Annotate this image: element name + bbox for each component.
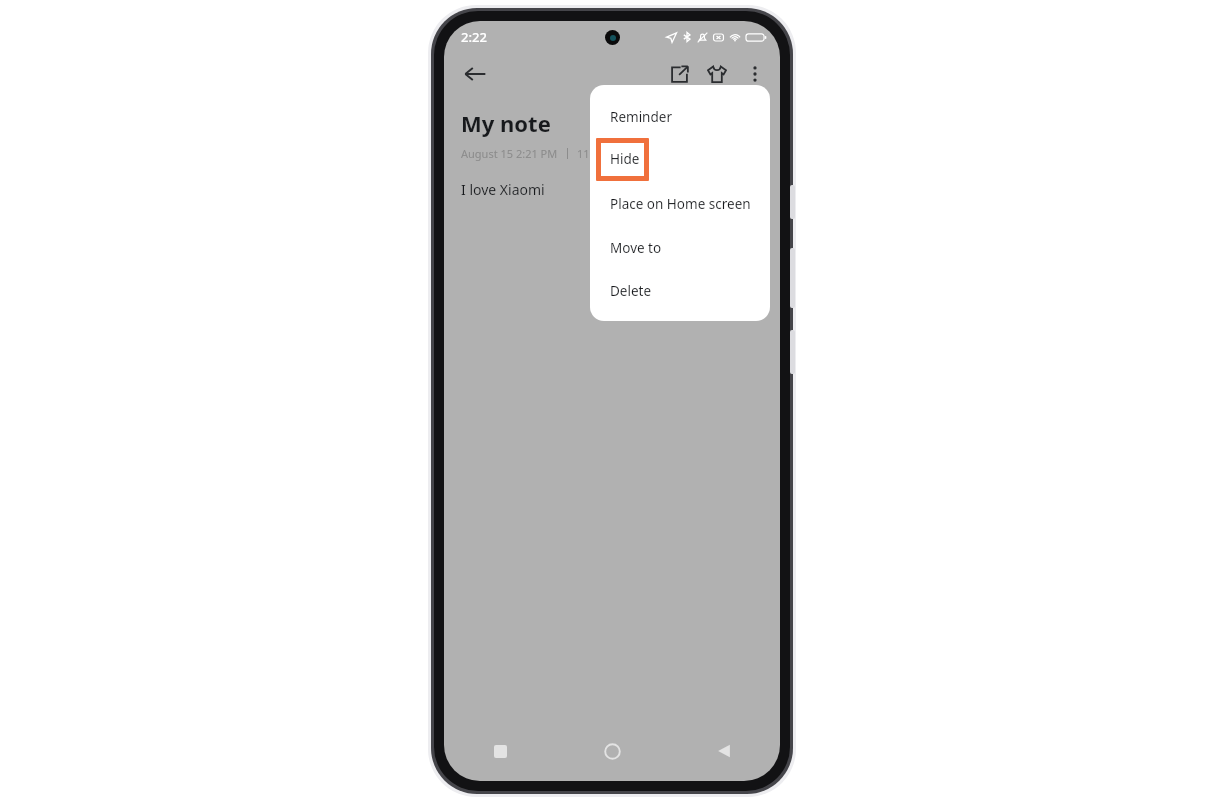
staticText: 2:22 bbox=[461, 28, 487, 46]
staticText: August 15 2:21 PM bbox=[461, 146, 558, 161]
staticText: Reminder bbox=[610, 108, 672, 126]
staticText: 11 c bbox=[577, 146, 598, 161]
staticText: I love Xiaomi bbox=[461, 180, 545, 199]
button[interactable]: Theme bbox=[698, 55, 736, 93]
button[interactable]: Home bbox=[556, 721, 668, 781]
staticText: Move to bbox=[610, 239, 662, 257]
button[interactable]: Back bbox=[668, 721, 780, 781]
button[interactable]: Delete bbox=[590, 273, 770, 309]
button[interactable]: Back bbox=[456, 55, 494, 93]
staticText: Delete bbox=[610, 282, 652, 300]
button[interactable]: Share bbox=[660, 55, 698, 93]
button[interactable]: Move to bbox=[590, 230, 770, 266]
staticText: Hide bbox=[610, 150, 640, 168]
staticText: My note bbox=[461, 108, 551, 138]
button[interactable]: Reminder bbox=[590, 99, 770, 135]
staticText: Place on Home screen bbox=[610, 195, 751, 213]
button[interactable]: Hide bbox=[590, 141, 770, 177]
button[interactable]: More options bbox=[736, 55, 774, 93]
button[interactable]: Place on Home screen bbox=[590, 186, 770, 222]
button[interactable]: Recent apps bbox=[444, 721, 556, 781]
